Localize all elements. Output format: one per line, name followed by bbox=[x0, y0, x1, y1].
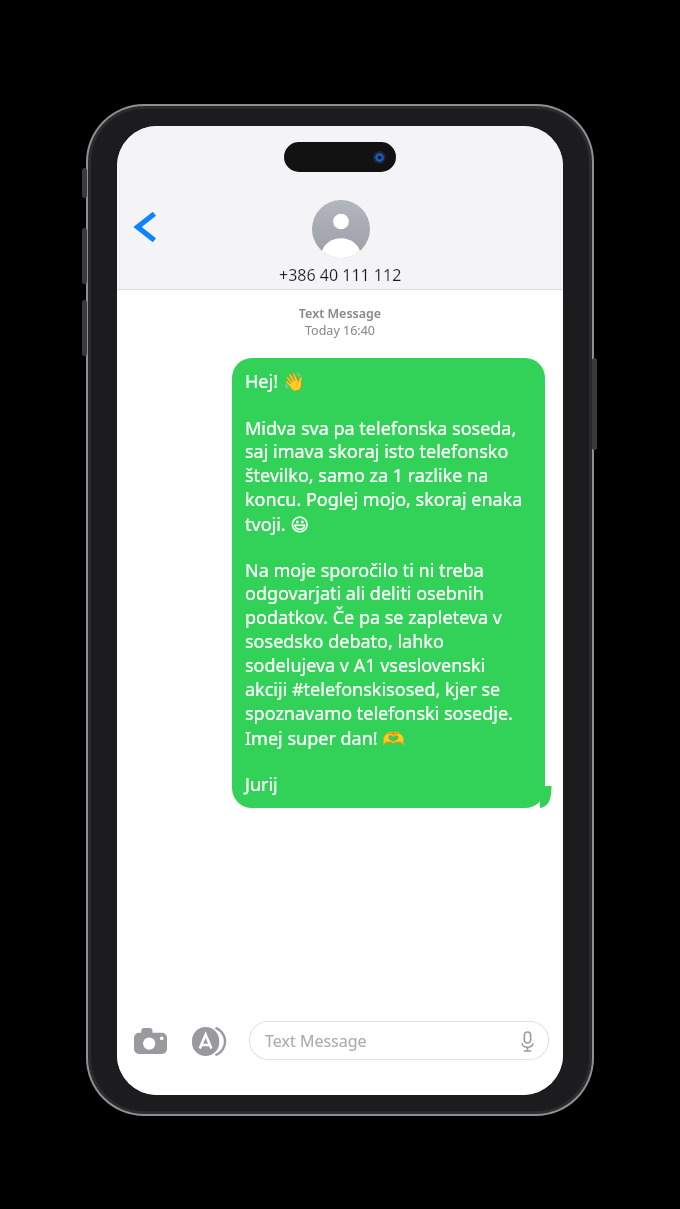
button[interactable]: Apps bbox=[190, 1022, 228, 1060]
button[interactable]: Camera bbox=[131, 1022, 169, 1060]
staticText: Hej! 👋 bbox=[245, 369, 306, 394]
button[interactable]: Hej! 👋 bbox=[232, 358, 545, 808]
staticText: +386 40 111 112 bbox=[279, 264, 402, 286]
staticText: Midva sva pa telefonska soseda, saj imav… bbox=[245, 416, 532, 536]
button[interactable]: Dictate bbox=[516, 1030, 538, 1052]
button[interactable]: Back bbox=[123, 204, 169, 250]
staticText: Text Message bbox=[265, 1030, 367, 1052]
staticText: Jurij bbox=[245, 772, 278, 797]
button[interactable]: Text Message bbox=[249, 1021, 549, 1060]
button[interactable]: +386 40 111 112 bbox=[279, 200, 402, 286]
staticText: Text Message Today 16:40 bbox=[117, 305, 563, 339]
staticText: Na moje sporočilo ti ni treba odgovarjat… bbox=[245, 558, 532, 750]
